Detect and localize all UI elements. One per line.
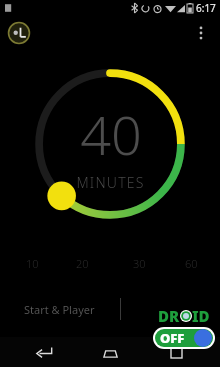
staticText: 40 — [80, 97, 142, 171]
button[interactable]: 20 — [76, 256, 89, 271]
button[interactable]: Recent apps — [154, 337, 198, 367]
button[interactable]: Home — [88, 337, 132, 367]
button[interactable]: App icon, navigate up — [8, 22, 30, 44]
staticText: 20 — [76, 256, 89, 271]
button[interactable]: 60 — [185, 256, 198, 271]
staticText: 10 — [26, 256, 39, 271]
button[interactable]: Start & Player — [0, 292, 120, 326]
button[interactable]: Back — [22, 337, 66, 367]
staticText: DR — [158, 306, 180, 326]
staticText: Start & Player — [24, 302, 95, 317]
staticText: OFF — [160, 329, 185, 347]
button[interactable]: More options — [188, 20, 214, 46]
staticText: 6:17 — [196, 1, 216, 15]
button[interactable]: 10 — [26, 256, 39, 271]
button[interactable]: Timer dial, 40 minutes — [26, 60, 194, 228]
staticText: ID — [192, 306, 210, 326]
staticText: 60 — [185, 256, 198, 271]
staticText: 30 — [133, 256, 146, 271]
staticText: MINUTES — [76, 173, 145, 192]
button[interactable]: Droid Off toggle — [150, 306, 218, 349]
button[interactable]: 30 — [133, 256, 146, 271]
